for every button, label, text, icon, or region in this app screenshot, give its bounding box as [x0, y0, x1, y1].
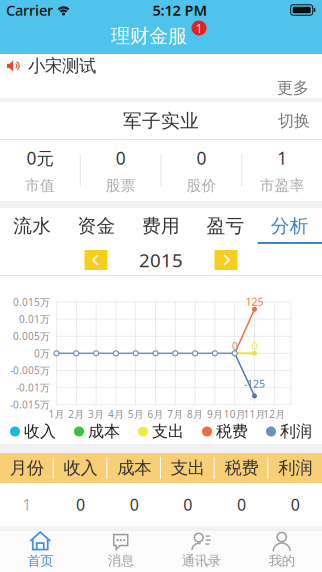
staticText: 理财金服 [111, 24, 187, 48]
button[interactable]: 我的 [241, 530, 322, 572]
staticText: 125 [245, 294, 263, 309]
staticText: 更多 [277, 78, 309, 98]
staticText: 0 [251, 338, 257, 353]
staticText: 5:12 PM [152, 0, 207, 20]
staticText: 0 [183, 494, 192, 515]
staticText: 0 [237, 494, 246, 515]
button[interactable]: 费用 [129, 208, 193, 244]
staticText: 消息 [108, 553, 134, 569]
staticText: 1月 [48, 407, 64, 421]
staticText: -0.015万 [10, 398, 50, 411]
staticText: 月份 [10, 457, 44, 479]
staticText: 0 [116, 146, 126, 169]
button[interactable]: 分析 [258, 208, 322, 244]
staticText: 3月 [88, 407, 104, 421]
staticText: 股票 [106, 176, 136, 194]
staticText: 0.01万 [19, 312, 50, 326]
staticText: -125 [244, 376, 265, 391]
staticText: 1 [22, 494, 31, 515]
staticText: 0 [76, 494, 85, 515]
staticText: 盈亏 [206, 214, 244, 237]
staticText: Carrier [6, 0, 53, 20]
staticText: 利润 [280, 422, 312, 441]
staticText: 10月 [224, 407, 246, 421]
staticText: 支出 [171, 457, 205, 479]
staticText: -0.01万 [16, 381, 50, 394]
staticText: 2月 [68, 407, 84, 421]
staticText: 5月 [128, 407, 144, 421]
staticText: 收入 [63, 457, 97, 479]
staticText: 资金 [78, 214, 116, 237]
staticText: 收入 [24, 422, 56, 441]
staticText: 市盈率 [260, 176, 305, 194]
staticText: 0 [130, 494, 139, 515]
staticText: 11月 [243, 407, 265, 421]
button[interactable]: 资金 [64, 208, 129, 244]
button[interactable]: 切换 [278, 102, 322, 140]
staticText: 切换 [278, 111, 310, 131]
staticText: 0.015万 [13, 295, 50, 309]
staticText: 流水 [13, 214, 51, 237]
staticText: 利润 [278, 457, 312, 479]
button[interactable]: 更多 [0, 78, 322, 98]
staticText: 9月 [207, 407, 223, 421]
staticText: 2015 [139, 248, 183, 272]
staticText: 通讯录 [182, 553, 221, 569]
staticText: 军子实业 [123, 109, 199, 132]
staticText: 分析 [271, 214, 309, 237]
staticText: 0 [232, 338, 238, 353]
staticText: 小宋测试 [28, 55, 96, 77]
staticText: 1 [195, 19, 202, 37]
staticText: 0万 [34, 346, 50, 360]
staticText: 股价 [186, 176, 216, 194]
staticText: 市值 [25, 176, 55, 194]
staticText: 支出 [152, 422, 184, 441]
staticText: 税费 [216, 422, 248, 441]
button[interactable]: Notifications [191, 20, 206, 35]
button[interactable]: 通讯录 [161, 530, 241, 572]
staticText: 首页 [27, 553, 53, 569]
button[interactable]: 首页 [0, 530, 80, 572]
staticText: 0.005万 [13, 329, 50, 343]
staticText: 6月 [147, 407, 163, 421]
staticText: 成本 [117, 457, 151, 479]
staticText: 1 [277, 146, 287, 169]
button[interactable]: 流水 [0, 208, 64, 244]
staticText: 我的 [269, 553, 295, 569]
staticText: 0 [196, 146, 206, 169]
staticText: 税费 [224, 457, 258, 479]
button[interactable]: Previous year [84, 250, 107, 270]
staticText: 7月 [167, 407, 183, 421]
staticText: 成本 [88, 422, 120, 441]
staticText: 4月 [108, 407, 124, 421]
button[interactable]: 消息 [80, 530, 161, 572]
staticText: 0元 [26, 146, 53, 169]
button[interactable]: 盈亏 [193, 208, 258, 244]
staticText: 12月 [263, 407, 285, 421]
staticText: -0.005万 [10, 364, 50, 377]
staticText: 0 [291, 494, 300, 515]
staticText: 8月 [187, 407, 203, 421]
button[interactable]: Next year [214, 250, 237, 270]
staticText: 费用 [142, 214, 180, 237]
